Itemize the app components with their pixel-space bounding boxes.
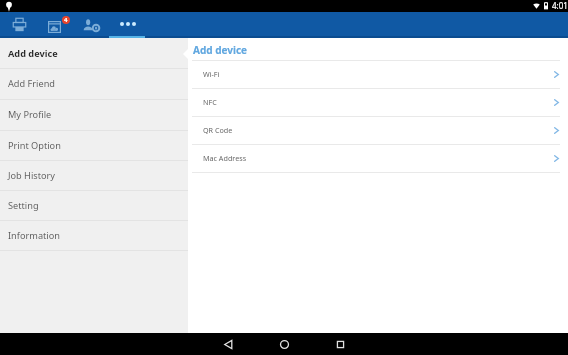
button[interactable]: Wi-Fi (188, 61, 568, 89)
button[interactable]: Add device (0, 39, 188, 69)
staticText: QR Code (203, 125, 233, 135)
staticText: Information (8, 229, 60, 242)
button[interactable]: Back (200, 333, 256, 355)
button[interactable]: Home (256, 333, 312, 355)
staticText: Setting (8, 199, 39, 212)
staticText: My Profile (8, 108, 52, 121)
button[interactable]: Job History (0, 161, 188, 191)
staticText: NFC (203, 97, 217, 107)
button[interactable]: Print Option (0, 131, 188, 161)
button[interactable]: Add friend (73, 12, 109, 38)
button[interactable]: Add Friend (0, 69, 188, 100)
button[interactable]: NFC (188, 89, 568, 117)
staticText: Add device (193, 43, 248, 57)
button[interactable]: Mac Address (188, 145, 568, 173)
button[interactable]: Information (0, 221, 188, 251)
staticText: Add Friend (8, 77, 56, 90)
button[interactable]: Print (2, 12, 37, 38)
staticText: Print Option (8, 139, 61, 152)
button[interactable]: Cloud jobs (37, 12, 73, 38)
button[interactable]: Recent apps (312, 333, 368, 355)
button[interactable]: My Profile (0, 100, 188, 131)
button[interactable]: QR Code (188, 117, 568, 145)
staticText: 4 (64, 16, 68, 24)
staticText: Job History (8, 169, 56, 182)
staticText: Mac Address (203, 153, 247, 163)
button[interactable]: More options (109, 12, 145, 38)
staticText: Add device (8, 47, 58, 60)
staticText: 4:01 (552, 0, 568, 11)
staticText: Wi-Fi (203, 69, 220, 79)
button[interactable]: Setting (0, 191, 188, 221)
